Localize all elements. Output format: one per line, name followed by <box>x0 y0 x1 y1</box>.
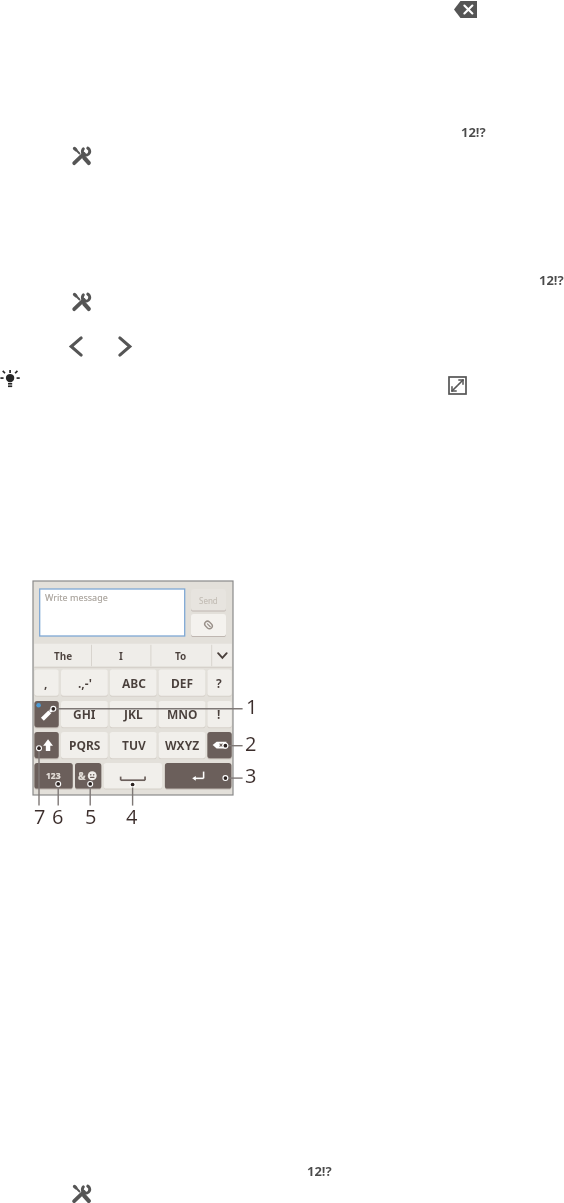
staticText: The <box>54 649 73 663</box>
staticText: 12!? <box>461 123 486 141</box>
staticText: PQRS <box>69 737 101 753</box>
staticText: 12!? <box>307 1162 332 1180</box>
button[interactable]: Expand <box>448 376 467 395</box>
staticText: TUV <box>122 737 146 753</box>
staticText: 2 <box>245 730 257 757</box>
staticText: 1 <box>246 693 258 720</box>
button[interactable]: Next <box>119 336 131 357</box>
button[interactable]: Settings <box>73 147 91 165</box>
button[interactable]: Previous <box>70 336 82 357</box>
staticText: Send <box>199 595 218 606</box>
button[interactable]: Tip <box>0 368 21 389</box>
staticText: 123 <box>46 770 61 782</box>
staticText: & <box>78 769 86 783</box>
staticText: 6 <box>52 803 64 830</box>
staticText: 7 <box>34 803 46 830</box>
staticText: I <box>119 649 123 663</box>
staticText: .,-' <box>78 675 92 691</box>
staticText: DEF <box>171 675 194 691</box>
staticText: ! <box>217 706 221 722</box>
staticText: 3 <box>245 762 257 789</box>
staticText: 4 <box>126 803 138 830</box>
staticText: Write message <box>45 591 108 603</box>
staticText: 12!? <box>539 271 564 289</box>
button[interactable]: Delete <box>454 1 477 18</box>
staticText: MNO <box>167 706 198 722</box>
staticText: GHI <box>73 706 96 722</box>
staticText: WXYZ <box>165 737 200 753</box>
staticText: 5 <box>85 803 97 830</box>
staticText: , <box>44 675 48 691</box>
staticText: To <box>175 649 187 663</box>
staticText: ABC <box>122 675 146 691</box>
staticText: ? <box>216 675 222 691</box>
button[interactable]: Settings <box>73 1185 91 1203</box>
staticText: JKL <box>124 706 143 722</box>
button[interactable]: Settings <box>73 293 91 311</box>
